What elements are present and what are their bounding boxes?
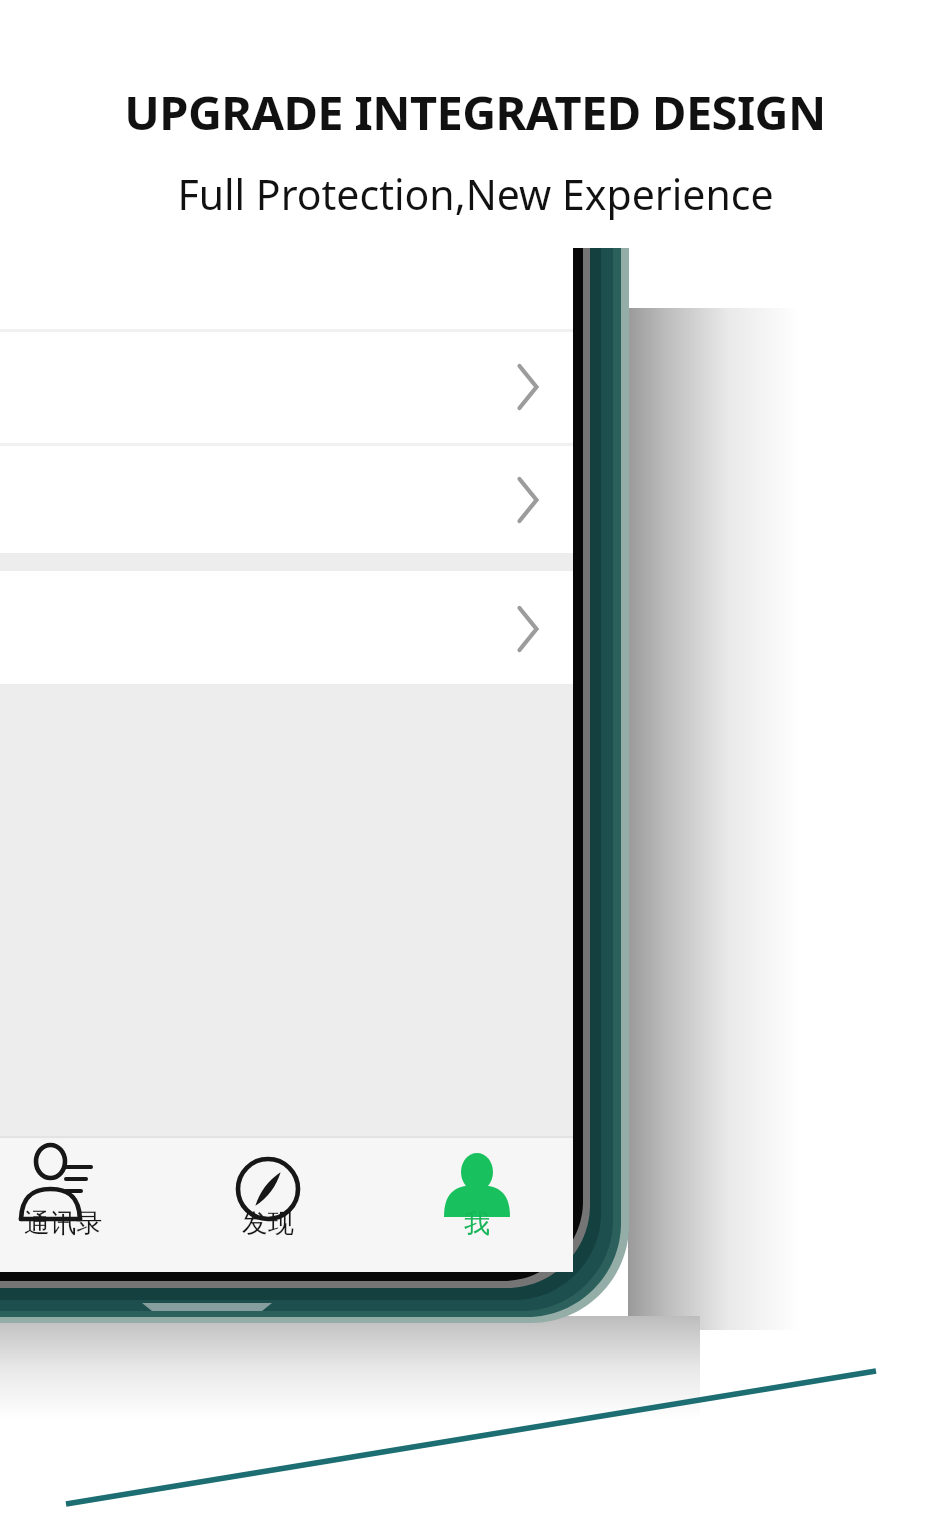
staticText: Full Protection,New Experience: [177, 166, 774, 222]
button[interactable]: Discover: [205, 1142, 331, 1266]
button[interactable]: Me: [414, 1142, 540, 1266]
staticText: UPGRADE INTEGRATED DESIGN: [124, 80, 826, 144]
staticText: 发现: [242, 1207, 294, 1240]
staticText: 我: [464, 1207, 490, 1240]
staticText: 通讯录: [24, 1207, 102, 1240]
button[interactable]: Contacts: [0, 1142, 126, 1266]
